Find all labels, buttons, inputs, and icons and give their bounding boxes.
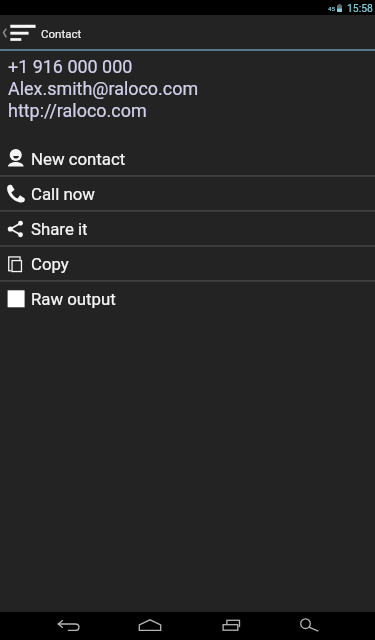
staticText: 15:58 bbox=[347, 2, 373, 14]
staticText: Share it bbox=[31, 219, 88, 239]
staticText: http://raloco.com bbox=[8, 100, 147, 121]
button[interactable]: Search bbox=[294, 612, 322, 640]
staticText: Contact bbox=[41, 27, 82, 40]
button[interactable]: Recent apps bbox=[219, 612, 247, 640]
other: Navigate up bbox=[2, 20, 38, 44]
staticText: Copy bbox=[31, 254, 69, 274]
staticText: 45 bbox=[328, 5, 335, 12]
button[interactable]: Call now bbox=[0, 177, 375, 211]
button[interactable]: Home bbox=[136, 612, 164, 640]
button[interactable]: Navigate up bbox=[0, 15, 375, 49]
button[interactable]: New contact bbox=[0, 142, 375, 176]
staticText: +1 916 000 000 bbox=[8, 56, 133, 77]
button[interactable]: Share it bbox=[0, 212, 375, 246]
staticText: Alex.smith@raloco.com bbox=[8, 78, 199, 99]
staticText: New contact bbox=[31, 149, 126, 169]
staticText: Call now bbox=[31, 184, 95, 204]
staticText: Raw output bbox=[31, 289, 116, 309]
button[interactable]: Raw output bbox=[0, 282, 375, 316]
button[interactable]: Copy bbox=[0, 247, 375, 281]
button[interactable]: Back bbox=[55, 612, 83, 640]
